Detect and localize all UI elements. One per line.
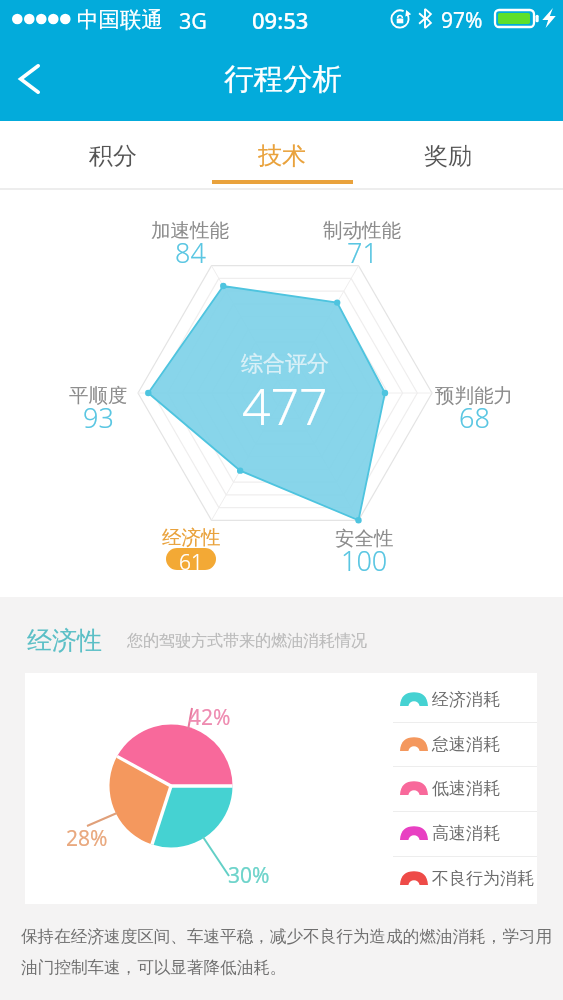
staticText: 怠速消耗	[432, 734, 500, 755]
staticText: 3G	[179, 6, 207, 35]
staticText: 高速消耗	[432, 823, 500, 844]
button[interactable]: 低速消耗	[393, 766, 537, 810]
staticText: 预判能力	[435, 383, 513, 408]
staticText: 行程分析	[224, 61, 342, 98]
button[interactable]: 经济消耗	[393, 677, 537, 721]
button[interactable]: 技术	[204, 121, 360, 190]
staticText: 积分	[89, 141, 137, 171]
staticText: 经济消耗	[432, 689, 500, 710]
staticText: 84	[175, 234, 206, 271]
button[interactable]: 积分	[35, 121, 191, 190]
staticText: 经济性	[162, 525, 221, 550]
staticText: 平顺度	[69, 383, 128, 408]
button[interactable]: Back	[0, 50, 58, 108]
button[interactable]: 高速消耗	[393, 811, 537, 855]
staticText: 93	[83, 399, 114, 436]
staticText: 不良行为消耗	[432, 868, 534, 889]
staticText: 100	[341, 542, 388, 579]
button[interactable]: 奖励	[370, 121, 526, 190]
staticText: 71	[347, 234, 378, 271]
staticText: 97%	[441, 6, 483, 35]
staticText: 30%	[228, 861, 270, 890]
staticText: 低速消耗	[432, 778, 500, 799]
staticText: 28%	[66, 824, 108, 853]
staticText: 中国联通	[77, 6, 163, 33]
staticText: 61	[179, 548, 203, 570]
staticText: 您的驾驶方式带来的燃油消耗情况	[127, 631, 367, 651]
staticText: 42%	[189, 703, 231, 732]
staticText: 加速性能	[151, 218, 229, 243]
staticText: 09:53	[252, 5, 309, 35]
staticText: 奖励	[424, 141, 472, 171]
button[interactable]: 不良行为消耗	[393, 856, 537, 900]
staticText: 477	[242, 372, 328, 440]
staticText: 安全性	[335, 526, 394, 551]
staticText: 制动性能	[323, 218, 401, 243]
staticText: 经济性	[27, 625, 102, 656]
staticText: 68	[459, 399, 490, 436]
button[interactable]: 怠速消耗	[393, 722, 537, 766]
staticText: 技术	[258, 141, 306, 171]
staticText: 保持在经济速度区间、车速平稳，减少不良行为造成的燃油消耗，学习用油门控制车速，可…	[21, 926, 561, 978]
staticText: 综合评分	[241, 350, 329, 378]
